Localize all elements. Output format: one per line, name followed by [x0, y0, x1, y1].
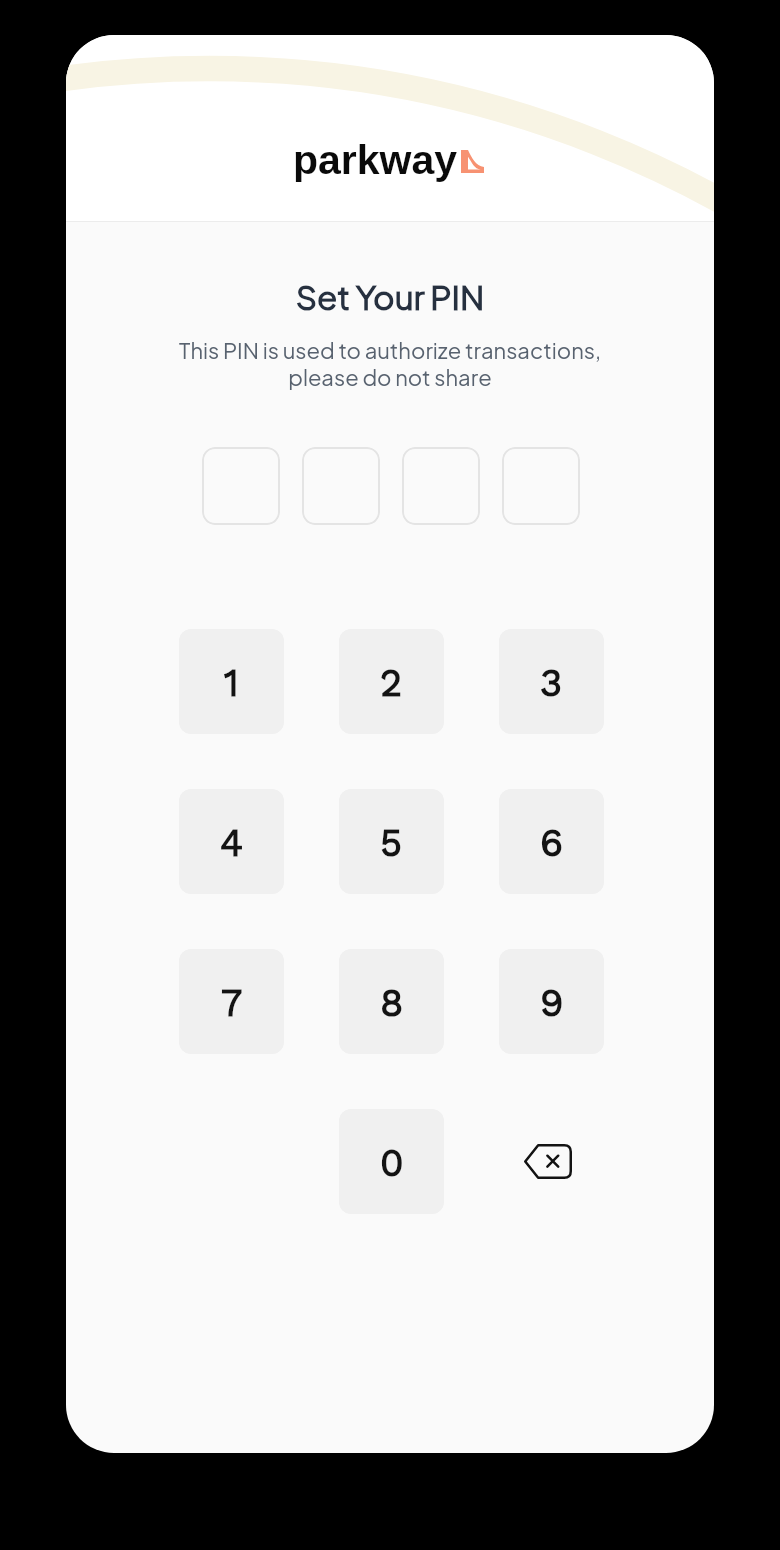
button[interactable]: 6 — [499, 789, 604, 894]
staticText: 4 — [220, 821, 244, 866]
button[interactable]: 9 — [499, 949, 604, 1054]
button[interactable]: 1 — [179, 629, 284, 734]
staticText: 9 — [540, 981, 564, 1026]
staticText: 1 — [224, 661, 239, 706]
staticText: Set Your PIN — [66, 276, 714, 318]
button[interactable] — [402, 447, 480, 525]
staticText: 0 — [380, 1141, 404, 1186]
button[interactable] — [302, 447, 380, 525]
button[interactable]: 7 — [179, 949, 284, 1054]
button[interactable]: 5 — [339, 789, 444, 894]
staticText: 6 — [540, 821, 564, 866]
button[interactable]: 0 — [339, 1109, 444, 1214]
staticText: This PIN is used to authorize transactio… — [66, 336, 714, 391]
staticText: 7 — [221, 981, 243, 1026]
staticText: 3 — [540, 661, 563, 706]
button[interactable] — [502, 447, 580, 525]
staticText: 8 — [380, 981, 404, 1026]
staticText: 5 — [380, 821, 403, 866]
staticText: parkway — [293, 137, 458, 183]
button[interactable]: 3 — [499, 629, 604, 734]
staticText: 2 — [380, 661, 403, 706]
button[interactable]: 8 — [339, 949, 444, 1054]
button[interactable]: 4 — [179, 789, 284, 894]
button[interactable] — [202, 447, 280, 525]
button[interactable]: Backspace — [499, 1109, 604, 1214]
button[interactable]: 2 — [339, 629, 444, 734]
